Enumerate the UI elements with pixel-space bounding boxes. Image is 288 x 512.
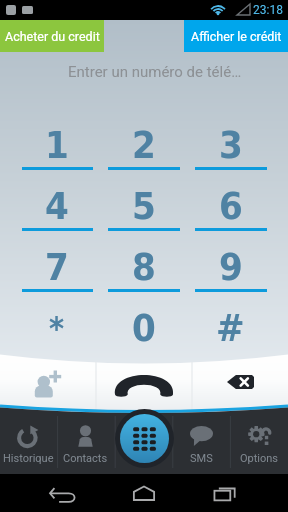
staticText: 2 — [132, 123, 156, 167]
staticText: 7 — [45, 245, 69, 289]
button[interactable]: 8 — [100, 231, 187, 292]
button[interactable]: Options — [230, 406, 288, 474]
staticText: Historique — [3, 452, 54, 465]
staticText: Afficher le crédit — [191, 29, 282, 44]
button[interactable]: 2 — [100, 109, 187, 170]
button[interactable]: Backspace — [192, 348, 288, 416]
staticText: 3 — [219, 123, 243, 167]
button[interactable]: Home — [123, 474, 165, 512]
staticText: 5 — [132, 184, 156, 228]
button[interactable]: Dialpad — [120, 414, 169, 463]
button[interactable]: 1 — [14, 109, 100, 170]
button[interactable]: Call — [96, 348, 192, 416]
staticText: # — [216, 306, 245, 350]
button[interactable]: Recents — [204, 474, 246, 512]
staticText: 1 — [45, 123, 69, 167]
staticText: 6 — [219, 184, 243, 228]
staticText: 9 — [219, 245, 243, 289]
staticText: Contacts — [63, 452, 108, 465]
button[interactable]: Back — [42, 474, 84, 512]
button[interactable]: 9 — [187, 231, 274, 292]
button[interactable]: Acheter du credit — [0, 20, 104, 52]
staticText: 0 — [132, 306, 156, 350]
staticText: Options — [240, 452, 279, 465]
button[interactable]: Contacts — [57, 406, 114, 474]
button[interactable]: 5 — [100, 170, 187, 231]
button[interactable]: SMS — [172, 406, 230, 474]
button[interactable]: * — [14, 292, 100, 353]
staticText: 23:18 — [253, 3, 283, 17]
staticText: 8 — [132, 245, 156, 289]
staticText: Acheter du credit — [5, 29, 100, 44]
button[interactable]: 7 — [14, 231, 100, 292]
button[interactable]: Add contact — [0, 348, 96, 416]
button[interactable]: Historique — [0, 406, 57, 474]
button[interactable]: 4 — [14, 170, 100, 231]
button[interactable]: Afficher le crédit — [184, 20, 288, 52]
button[interactable]: 6 — [187, 170, 274, 231]
button[interactable]: 0 — [100, 292, 187, 353]
button[interactable]: 3 — [187, 109, 274, 170]
staticText: SMS — [190, 452, 213, 465]
button[interactable]: # — [187, 292, 274, 353]
staticText: * — [49, 309, 65, 346]
staticText: 4 — [45, 184, 69, 228]
staticText: Entrer un numéro de télé… — [68, 63, 242, 81]
